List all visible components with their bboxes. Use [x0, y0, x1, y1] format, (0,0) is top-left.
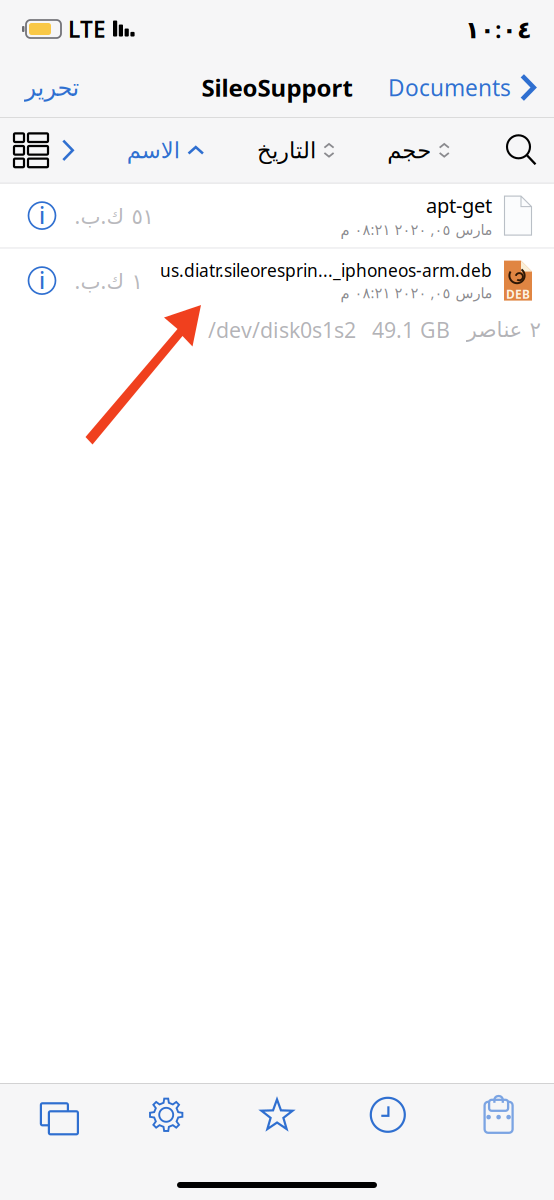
button[interactable]: Info: [24, 261, 60, 301]
staticText: التاريخ: [256, 137, 315, 163]
staticText: apt-get: [426, 192, 492, 219]
button[interactable]: تحرير: [20, 63, 83, 111]
button[interactable]: Documents: [388, 63, 536, 111]
staticText: حجم: [387, 137, 431, 163]
staticText: i: [39, 265, 45, 295]
staticText: ٥١ ك.ب.: [74, 201, 153, 230]
button[interactable]: الاسم: [126, 125, 204, 175]
staticText: DEB: [506, 286, 530, 302]
button[interactable]: Clipboard: [443, 1087, 554, 1143]
button[interactable]: View options: [14, 125, 74, 175]
button[interactable]: حجم: [387, 125, 450, 175]
staticText: مارس ٠٥, ٢٠٢٠ ٠٨:٢١ م: [340, 283, 492, 302]
button[interactable]: i: [0, 184, 554, 249]
button[interactable]: Settings: [111, 1087, 222, 1143]
staticText: مارس ٠٥, ٢٠٢٠ ٠٨:٢١ م: [340, 220, 492, 239]
staticText: تحرير: [24, 74, 79, 101]
staticText: SileoSupport: [201, 72, 352, 103]
staticText: i: [39, 200, 45, 230]
staticText: ١٠:٠٤: [465, 13, 532, 45]
staticText: ٢ عناصر: [466, 317, 540, 342]
staticText: us.diatr.sileoresprin..._iphoneos-arm.de…: [160, 259, 492, 282]
button[interactable]: Favorites: [222, 1087, 332, 1143]
button[interactable]: التاريخ: [256, 125, 334, 175]
button[interactable]: Info: [24, 196, 60, 236]
staticText: الاسم: [126, 137, 179, 163]
staticText: ١ ك.ب.: [74, 266, 142, 295]
staticText: LTE: [68, 14, 106, 44]
button[interactable]: i: [0, 249, 554, 313]
button[interactable]: Browse: [0, 1087, 111, 1143]
staticText: Documents: [388, 72, 511, 102]
button[interactable]: Search: [502, 125, 542, 175]
staticText: /dev/disk0s1s2: [208, 315, 356, 344]
button[interactable]: Recents: [332, 1087, 443, 1143]
staticText: 49.1 GB: [372, 315, 450, 344]
